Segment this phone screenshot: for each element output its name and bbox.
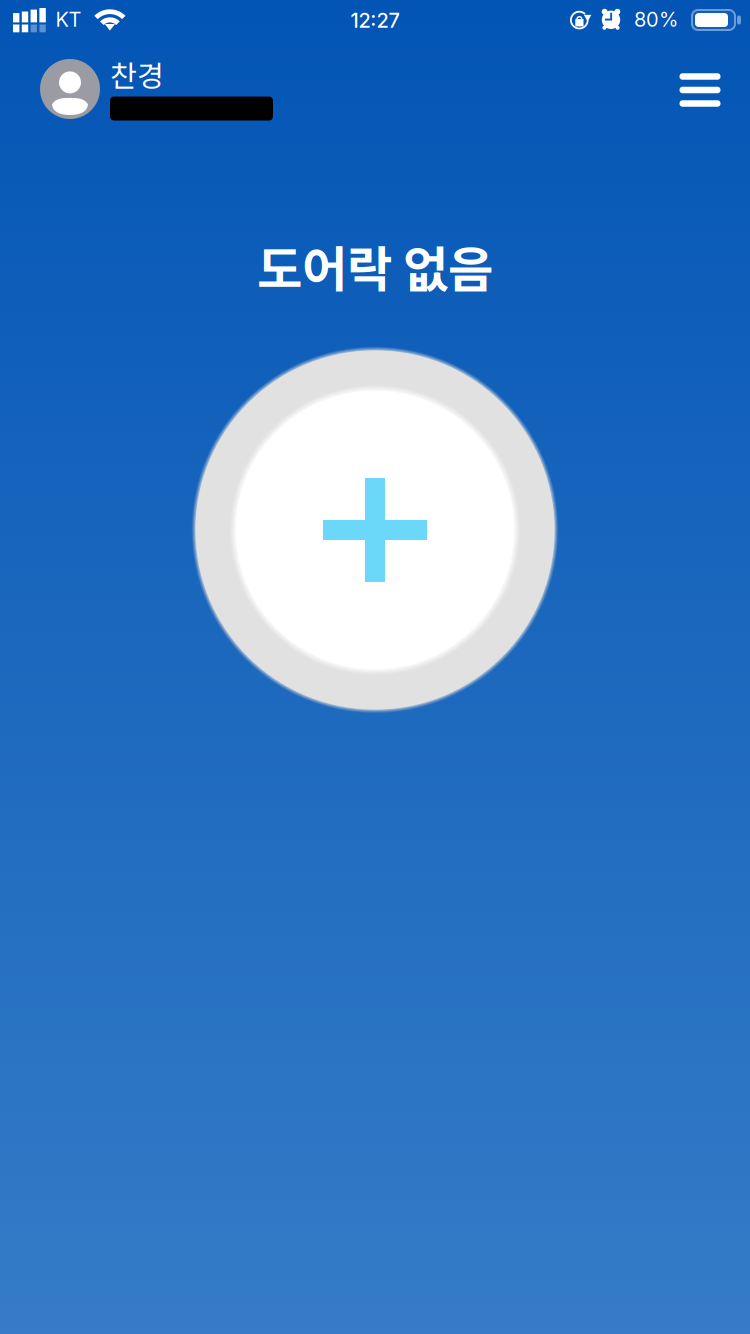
button[interactable]: Menu <box>664 59 736 121</box>
staticText: KT <box>55 7 81 32</box>
staticText: 도어락 없음 <box>257 230 493 302</box>
staticText: 찬경 <box>110 53 164 95</box>
staticText: 12:27 <box>350 8 399 33</box>
button[interactable]: 찬경 <box>40 56 275 122</box>
button[interactable]: Add door lock <box>189 344 560 715</box>
staticText: 80% <box>634 7 678 32</box>
